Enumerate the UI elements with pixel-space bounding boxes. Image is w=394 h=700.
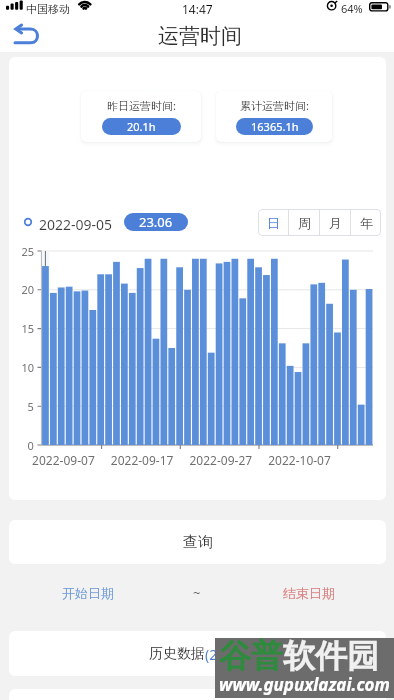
staticText: ~ — [193, 584, 201, 602]
staticText: www.gupuxlazai.com — [219, 673, 390, 696]
button[interactable]: 返回 — [6, 18, 42, 50]
staticText: 开始日期 — [62, 585, 114, 601]
staticText: 昨日运营时间: — [107, 98, 176, 113]
button[interactable]: 历史数据 — [9, 631, 386, 676]
button[interactable]: 开始日期 — [48, 580, 128, 606]
staticText: 2022-09-05 — [39, 215, 113, 234]
staticText: 日 — [267, 215, 280, 231]
staticText: 累计运营时间: — [240, 98, 309, 113]
staticText: 23.06 — [139, 213, 173, 231]
button[interactable]: 年 — [351, 209, 381, 236]
staticText: 历史数据 — [149, 645, 205, 663]
staticText: (2022-09-05) — [205, 645, 287, 664]
staticText: 14:47 — [182, 1, 213, 17]
button[interactable]: 昨日运营时间: — [81, 91, 201, 142]
staticText: 中国移动 — [26, 2, 70, 16]
staticText: 年 — [360, 215, 373, 231]
staticText: 软件园 — [283, 636, 379, 676]
button[interactable]: 结束日期 — [269, 580, 349, 606]
staticText: 月 — [329, 215, 342, 231]
staticText: 20.1h — [127, 119, 156, 134]
button[interactable]: 累计运营时间: — [216, 91, 332, 142]
staticText: 64% — [341, 1, 363, 16]
button[interactable]: 日 — [258, 209, 288, 236]
button[interactable]: 查询 — [9, 520, 386, 564]
staticText: 查询 — [183, 533, 213, 552]
staticText: 结束日期 — [283, 585, 335, 601]
staticText: 16365.1h — [251, 119, 299, 134]
button[interactable]: 周 — [289, 209, 319, 236]
staticText: 谷普 — [219, 636, 283, 676]
staticText: 运营时间 — [158, 23, 242, 49]
button[interactable]: 月 — [320, 209, 350, 236]
button[interactable] — [9, 689, 386, 700]
staticText: 周 — [298, 215, 311, 231]
